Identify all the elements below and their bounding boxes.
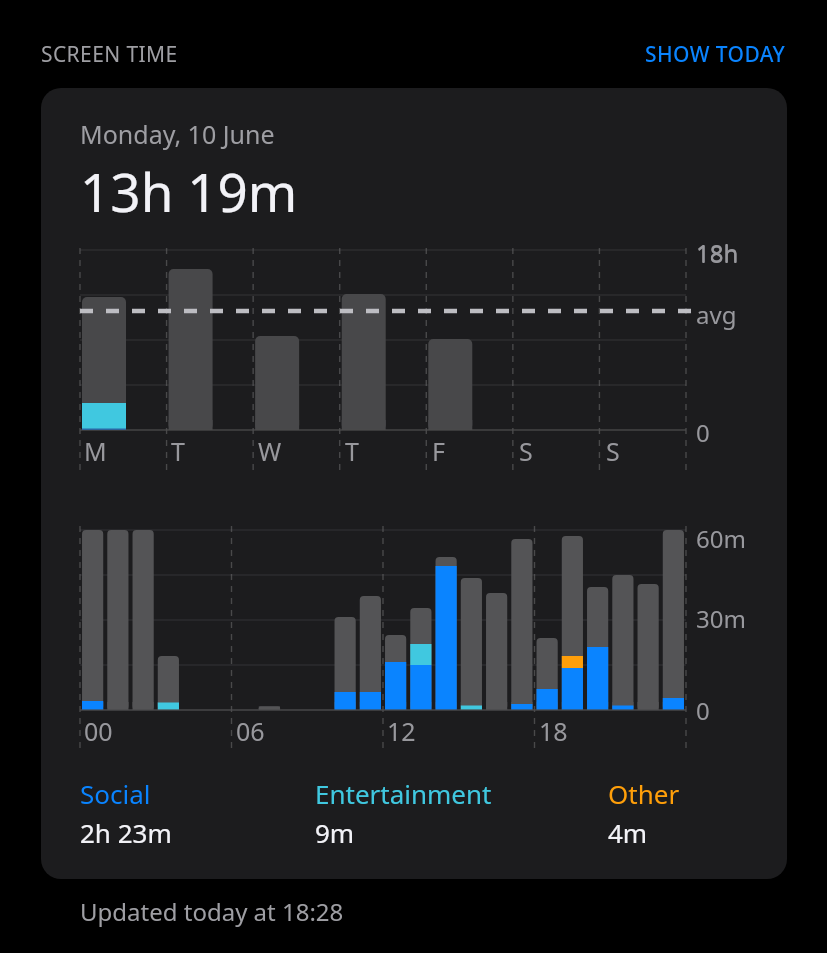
staticText: 12: [387, 714, 416, 748]
staticText: avg: [696, 298, 737, 331]
staticText: 4m: [608, 815, 648, 850]
staticText: SHOW TODAY: [645, 40, 786, 69]
staticText: W: [258, 434, 282, 468]
staticText: 18h: [696, 236, 739, 269]
staticText: S: [519, 434, 533, 468]
button[interactable]: SCREEN TIME: [41, 40, 178, 69]
staticText: 60m: [696, 522, 746, 555]
staticText: Entertainment: [315, 776, 492, 811]
button[interactable]: SHOW TODAY: [645, 40, 786, 69]
staticText: M: [84, 434, 107, 468]
staticText: 0: [696, 694, 710, 727]
button[interactable]: Social: [80, 776, 315, 850]
staticText: S: [606, 434, 620, 468]
staticText: 00: [84, 714, 113, 748]
staticText: 06: [236, 714, 265, 748]
staticText: F: [432, 434, 445, 468]
staticText: T: [345, 434, 359, 468]
staticText: Updated today at 18:28: [80, 895, 344, 928]
staticText: Social: [80, 776, 151, 811]
staticText: 9m: [315, 815, 355, 850]
staticText: 0: [696, 416, 710, 449]
staticText: 18: [539, 714, 568, 748]
button[interactable]: Entertainment: [315, 776, 608, 850]
staticText: Monday, 10 June: [80, 117, 275, 151]
staticText: Other: [608, 776, 680, 811]
staticText: 18h: [696, 237, 739, 270]
staticText: T: [171, 434, 185, 468]
staticText: 30m: [696, 602, 746, 635]
staticText: 2h 23m: [80, 815, 172, 850]
button[interactable]: Monday, 10 June: [41, 88, 787, 879]
button[interactable]: Other: [608, 776, 753, 850]
staticText: 13h 19m: [80, 155, 298, 227]
